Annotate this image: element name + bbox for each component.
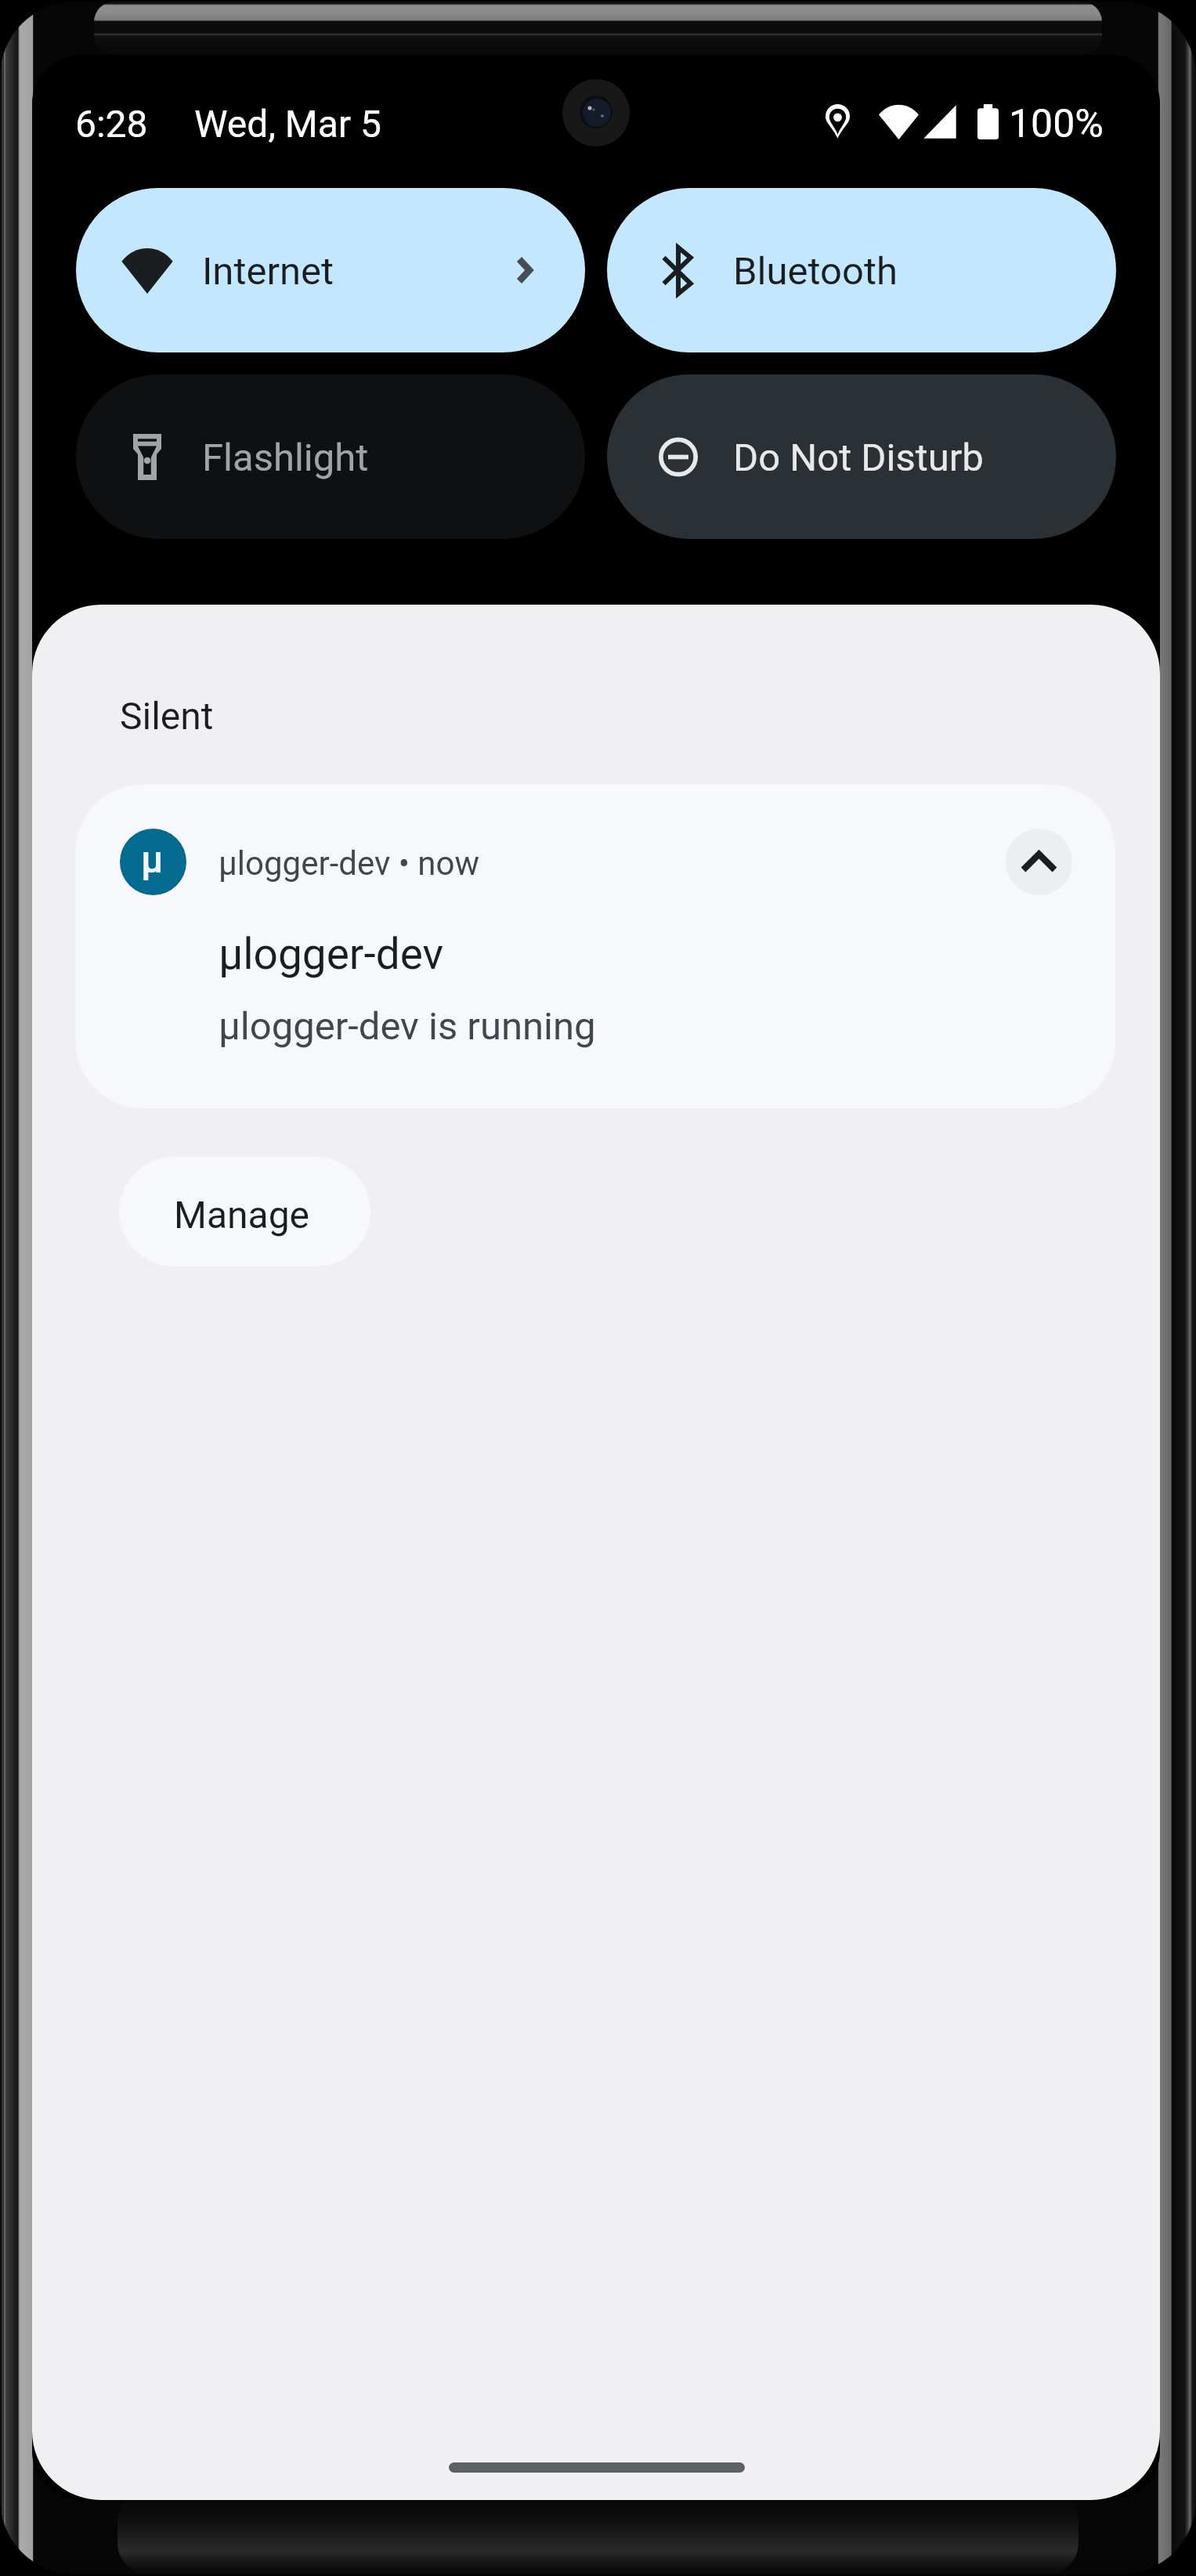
button[interactable]: Bluetooth [607, 188, 1116, 352]
staticText: Internet [202, 249, 334, 294]
staticText: Manage [174, 1193, 310, 1237]
staticText: Flashlight [202, 435, 369, 480]
staticText: Silent [120, 694, 214, 738]
staticText: 100% [1009, 101, 1104, 147]
button[interactable]: Flashlight [76, 374, 585, 539]
button[interactable]: Manage [119, 1157, 370, 1266]
staticText: μ [141, 837, 164, 881]
button[interactable]: Internet [76, 188, 585, 352]
button[interactable]: μ [76, 785, 1115, 1108]
staticText: μlogger-dev • now [219, 844, 480, 883]
staticText: μlogger-dev [219, 929, 444, 979]
staticText: Wed, Mar 5 [194, 102, 381, 146]
staticText: μlogger-dev is running [219, 1004, 596, 1049]
staticText: 6:28 [75, 102, 148, 146]
button[interactable]: Collapse notification [1006, 829, 1072, 895]
staticText: Do Not Disturb [733, 435, 984, 480]
button[interactable]: Do Not Disturb [607, 374, 1116, 539]
staticText: Bluetooth [733, 249, 898, 294]
